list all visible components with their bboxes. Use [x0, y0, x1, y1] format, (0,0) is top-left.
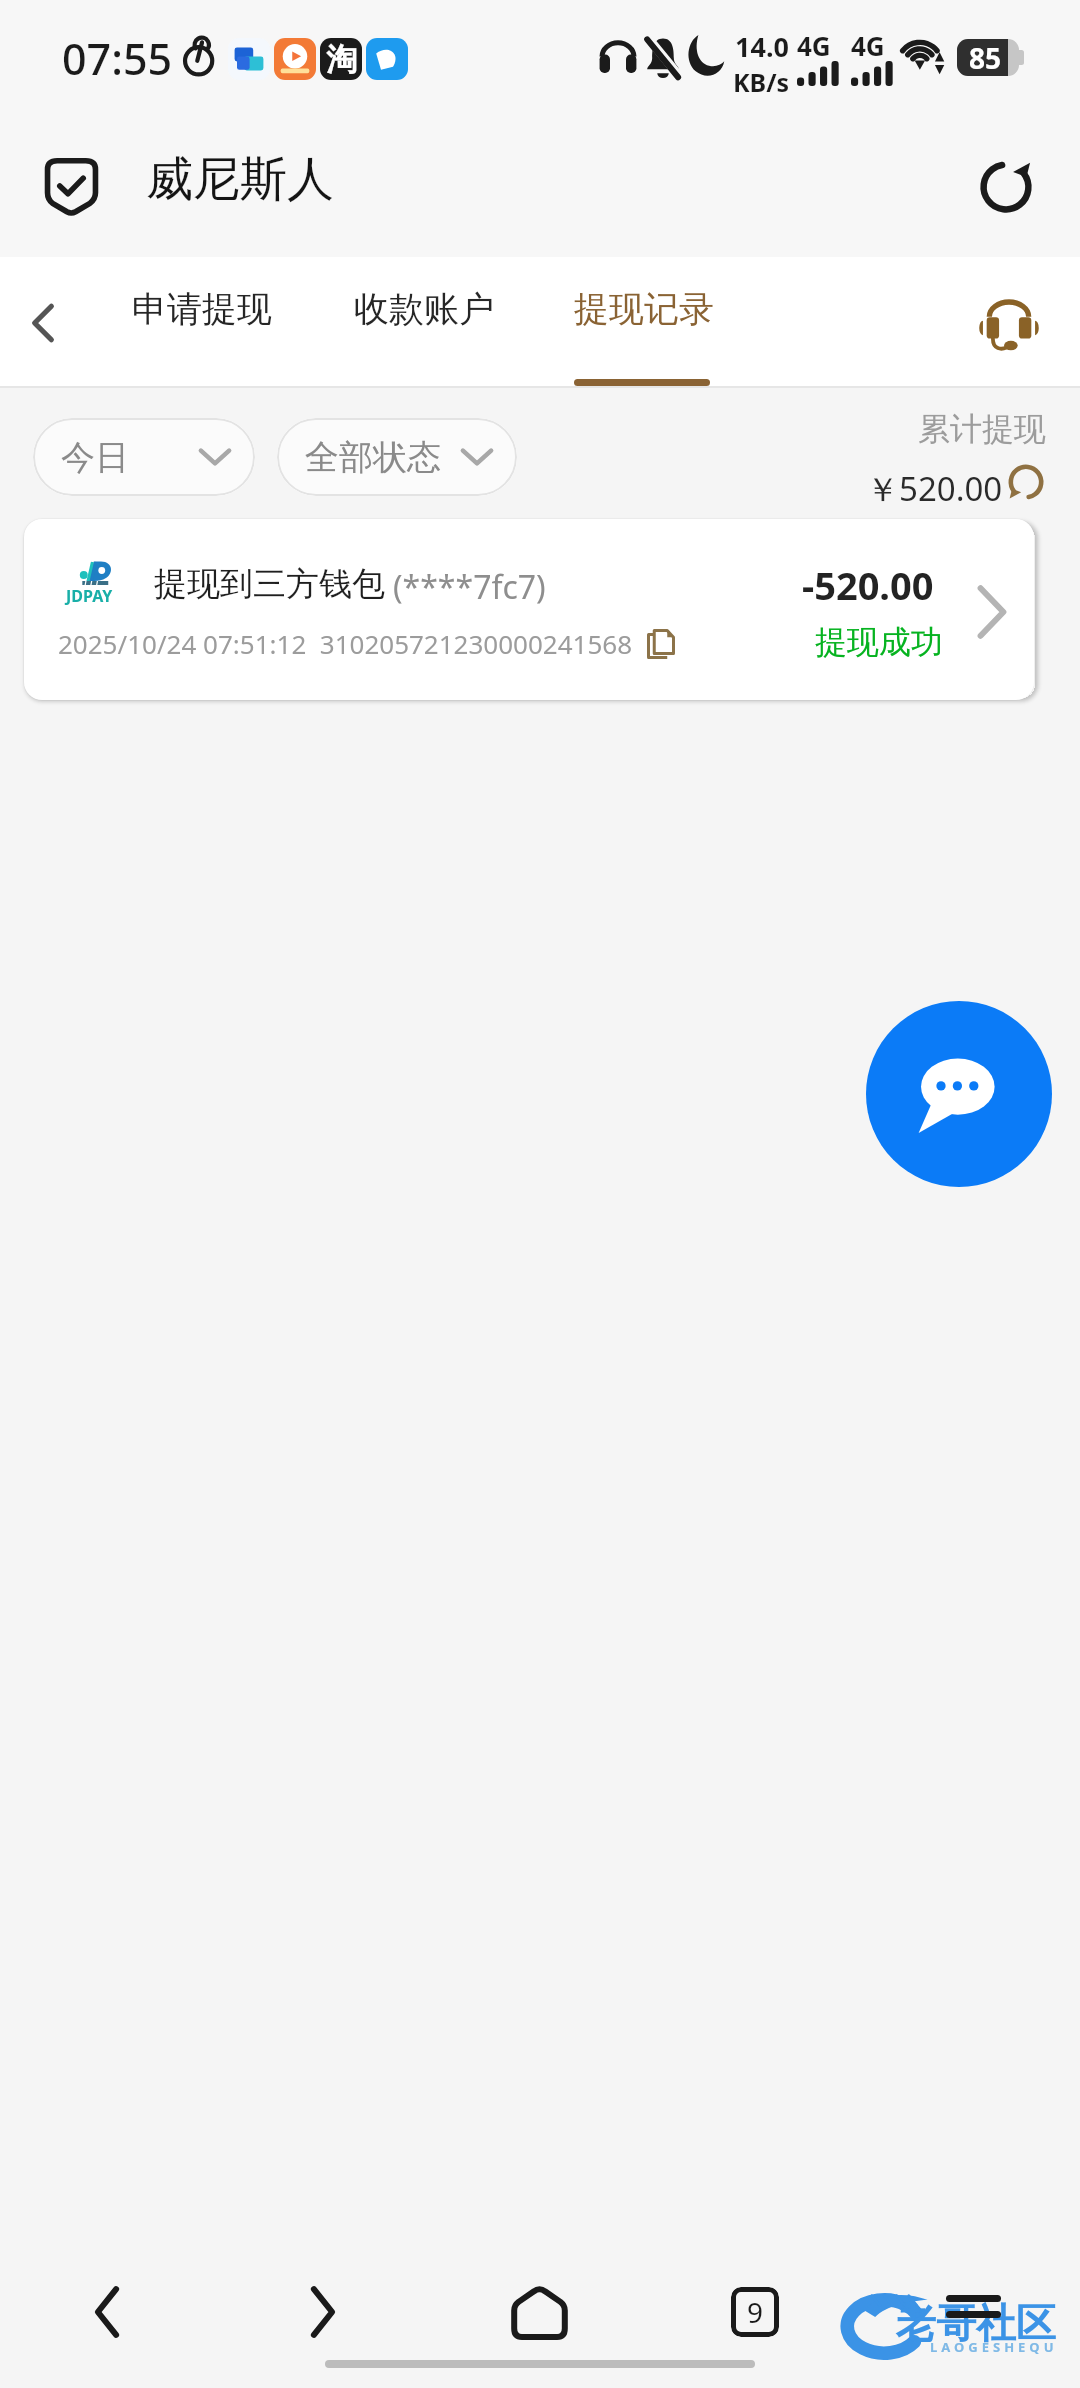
button[interactable]: Customer service chat — [866, 1001, 1052, 1187]
staticText: 提现到三方钱包 — [154, 563, 385, 605]
staticText: 14.0 — [735, 28, 789, 65]
button[interactable]: 收款账户 — [340, 257, 504, 388]
staticText: 威尼斯人 — [146, 150, 334, 209]
staticText: 全部状态 — [305, 436, 441, 479]
button[interactable]: 今日 — [33, 418, 255, 496]
button[interactable]: Refresh total — [1002, 458, 1050, 506]
staticText: 提现记录 — [574, 287, 714, 331]
staticText: 累计提现 — [918, 409, 1046, 449]
staticText: 淘 — [326, 40, 357, 79]
button[interactable]: 申请提现 — [118, 257, 282, 388]
button[interactable]: Back — [1, 280, 87, 366]
staticText: JDPAY — [66, 585, 113, 607]
staticText: 4G — [851, 28, 885, 63]
staticText: 申请提现 — [132, 287, 272, 331]
button[interactable]: Copy order number — [638, 621, 684, 667]
button[interactable]: Forward — [277, 2266, 369, 2358]
button[interactable]: Menu — [925, 2266, 1017, 2358]
staticText: -520.00 — [802, 559, 934, 611]
staticText: ￥520.00 — [866, 466, 1003, 511]
staticText: (****7fc7) — [393, 565, 546, 609]
button[interactable]: Refresh — [961, 142, 1051, 232]
button[interactable]: 提现记录 — [560, 257, 724, 388]
staticText: 老哥社区 — [896, 2298, 1056, 2348]
button[interactable]: Home — [493, 2266, 585, 2358]
staticText: 4G — [797, 28, 831, 63]
staticText: KB/s — [733, 65, 790, 99]
staticText: 07:55 — [62, 29, 173, 88]
staticText: 9 — [747, 2293, 764, 2331]
staticText: 85 — [969, 39, 1002, 76]
button[interactable]: Customer support — [962, 278, 1052, 368]
staticText: 收款账户 — [354, 287, 494, 331]
button[interactable]: Back — [61, 2266, 153, 2358]
button[interactable]: JDPAY — [24, 519, 1034, 700]
staticText: 2025/10/24 07:51:12 31020572123000024156… — [58, 626, 633, 661]
staticText: LAOGESHEQU — [930, 2338, 1058, 2356]
button[interactable]: Tabs: 9 open — [709, 2266, 801, 2358]
staticText: 提现成功 — [815, 622, 943, 662]
button[interactable]: 全部状态 — [277, 418, 517, 496]
staticText: 今日 — [61, 436, 129, 479]
